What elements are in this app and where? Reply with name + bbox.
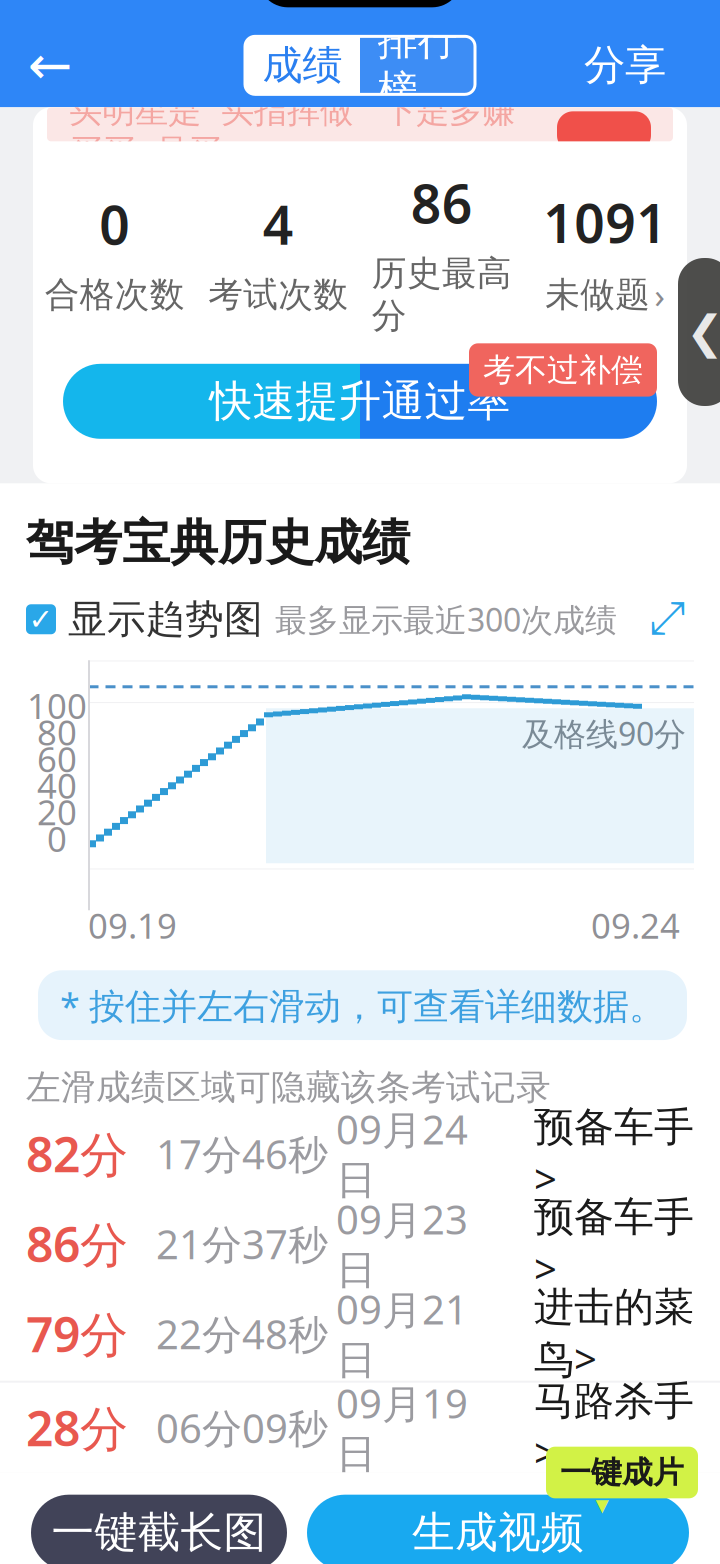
staticText: 0 bbox=[47, 815, 67, 861]
staticText: 0 bbox=[99, 189, 130, 259]
staticText: 79分 bbox=[26, 1302, 128, 1365]
staticText: 09.24 bbox=[591, 902, 680, 948]
staticText: 4 bbox=[263, 189, 294, 259]
button[interactable]: ✓ bbox=[26, 595, 263, 643]
staticText: 马路杀手> bbox=[534, 1376, 694, 1479]
button[interactable]: 生成视频 bbox=[307, 1495, 689, 1564]
staticText: 快速提升通过率 bbox=[209, 375, 510, 427]
staticText: 100 bbox=[27, 682, 87, 728]
button[interactable]: Expand panel bbox=[678, 258, 720, 406]
staticText: 一键成片 bbox=[560, 1454, 684, 1491]
button[interactable]: 28分 bbox=[0, 1383, 720, 1473]
staticText: ✓ bbox=[28, 603, 53, 636]
staticText: 06分09秒 bbox=[156, 1401, 328, 1454]
button[interactable]: 86分 bbox=[0, 1199, 720, 1289]
staticText: ❮ bbox=[686, 306, 720, 358]
button[interactable]: 79分 bbox=[0, 1289, 720, 1379]
staticText: 一键截长图 bbox=[51, 1506, 266, 1559]
button[interactable]: 1091 bbox=[523, 187, 687, 318]
staticText: 40 bbox=[37, 762, 77, 808]
staticText: 82分 bbox=[26, 1122, 128, 1185]
button[interactable]: 排行榜 bbox=[360, 36, 475, 94]
staticText: 86分 bbox=[26, 1212, 128, 1275]
staticText: 分享 bbox=[584, 40, 666, 91]
staticText: ▾ bbox=[595, 1489, 608, 1520]
staticText: 20 bbox=[37, 789, 77, 835]
staticText: 09月24日 bbox=[336, 1102, 468, 1205]
staticText: 及格线90分 bbox=[522, 712, 686, 754]
staticText: 考试次数 bbox=[208, 273, 348, 316]
staticText: 进击的菜鸟> bbox=[534, 1282, 694, 1385]
staticText: 预备车手> bbox=[534, 1192, 694, 1295]
staticText: 60 bbox=[37, 736, 77, 782]
button[interactable]: 分享 bbox=[572, 25, 678, 105]
staticText: 驾考宝典历史成绩 bbox=[26, 513, 410, 572]
staticText: 28分 bbox=[26, 1396, 128, 1459]
staticText: 22分48秒 bbox=[156, 1307, 328, 1360]
staticText: 合格次数 bbox=[45, 273, 185, 316]
staticText: ← bbox=[27, 35, 72, 96]
staticText: 生成视频 bbox=[412, 1506, 584, 1559]
staticText: 09月19日 bbox=[336, 1376, 468, 1479]
staticText: 17分46秒 bbox=[156, 1127, 328, 1180]
staticText: 09月21日 bbox=[336, 1282, 468, 1385]
staticText: 显示趋势图 bbox=[68, 595, 263, 643]
staticText: 未做题 bbox=[545, 273, 650, 316]
staticText: 预备车手> bbox=[534, 1102, 694, 1205]
button[interactable]: 一键截长图 bbox=[31, 1495, 287, 1564]
button[interactable]: 快速提升通过率 bbox=[33, 364, 687, 439]
staticText: 86 bbox=[411, 167, 473, 238]
staticText: 21分37秒 bbox=[156, 1217, 328, 1270]
staticText: 最多显示最近300次成绩 bbox=[275, 598, 617, 640]
staticText: 历史最高分 bbox=[372, 252, 512, 337]
staticText: 09月23日 bbox=[336, 1192, 468, 1295]
button[interactable]: Fullscreen bbox=[640, 592, 694, 646]
staticText: * 按住并左右滑动，可查看详细数据。 bbox=[60, 981, 665, 1029]
staticText: ⤢ bbox=[649, 597, 685, 641]
staticText: 排行榜 bbox=[377, 16, 457, 114]
staticText: › bbox=[654, 272, 665, 318]
staticText: 左滑成绩区域可隐藏该条考试记录 bbox=[26, 1066, 551, 1109]
button[interactable]: 成绩 bbox=[245, 36, 360, 94]
staticText: 1091 bbox=[543, 187, 667, 258]
staticText: 考不过补偿 bbox=[483, 350, 643, 390]
button[interactable]: 82分 bbox=[0, 1109, 720, 1199]
staticText: 09.19 bbox=[88, 902, 177, 948]
staticText: 买明星是 买指挥做 下是多赚买买 是买 bbox=[69, 90, 515, 172]
staticText: 成绩 bbox=[262, 41, 342, 90]
button[interactable]: Back bbox=[10, 25, 90, 105]
staticText: 80 bbox=[37, 709, 77, 755]
